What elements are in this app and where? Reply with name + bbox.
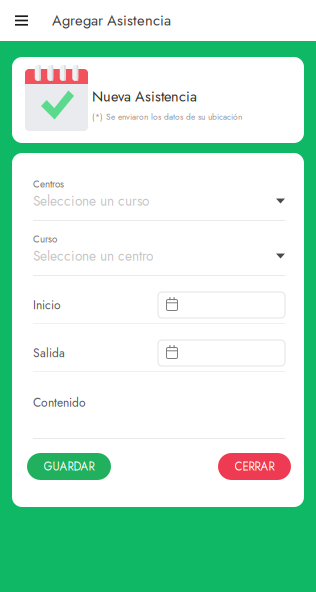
staticText: Centros: [33, 177, 64, 191]
staticText: Inicio: [33, 296, 61, 314]
staticText: Agregar Asistencia: [52, 10, 171, 31]
staticText: Salida: [33, 344, 65, 362]
button[interactable]: CERRAR: [218, 453, 291, 480]
staticText: Nueva Asistencia: [92, 86, 197, 107]
button[interactable]: Centros: [33, 179, 285, 221]
button[interactable]: Inicio: [158, 292, 285, 318]
staticText: CERRAR: [234, 458, 274, 475]
staticText: Curso: [33, 232, 57, 246]
staticText: Seleccione un centro: [33, 246, 153, 266]
button[interactable]: GUARDAR: [27, 453, 111, 480]
staticText: GUARDAR: [43, 458, 94, 475]
button[interactable]: Curso: [33, 234, 285, 276]
button[interactable]: Menu: [0, 0, 43, 41]
staticText: Contenido: [33, 394, 86, 411]
button[interactable]: Salida: [158, 340, 285, 366]
staticText: (*) Se enviaron los datos de su ubicació…: [92, 111, 242, 123]
staticText: Seleccione un curso: [33, 191, 149, 211]
